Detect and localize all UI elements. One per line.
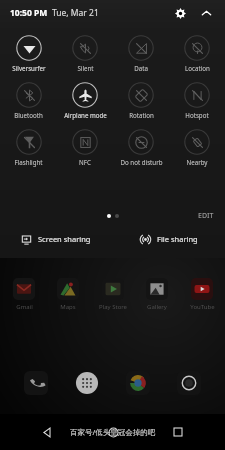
staticText: EDIT — [198, 211, 214, 221]
button[interactable]: Bluetooth — [0, 79, 57, 122]
button[interactable]: Do not disturb — [113, 126, 169, 169]
staticText: Airplane mode — [64, 111, 107, 119]
staticText: Silversurfer — [12, 64, 46, 72]
button[interactable]: Hotspot — [169, 79, 225, 122]
button[interactable]: Camera — [174, 368, 204, 398]
button[interactable]: Rotation — [113, 79, 169, 122]
staticText: Location — [185, 64, 210, 72]
button[interactable]: File sharing — [112, 228, 225, 250]
staticText: Hotspot — [185, 111, 209, 119]
staticText: Play Store — [99, 303, 127, 311]
button[interactable]: Nearby — [169, 126, 225, 169]
button[interactable]: YouTube — [181, 278, 223, 311]
staticText: Gallery — [147, 303, 167, 311]
button[interactable]: Location — [169, 32, 225, 75]
staticText: Do not disturb — [120, 158, 163, 166]
staticText: Data — [134, 64, 148, 72]
button[interactable]: Data — [113, 32, 169, 75]
button[interactable]: Gmail — [3, 278, 45, 311]
button[interactable]: EDIT — [195, 209, 217, 223]
button[interactable]: Back — [34, 419, 60, 445]
staticText: Nearby — [186, 158, 208, 166]
button[interactable]: Home — [100, 419, 126, 445]
button[interactable]: Collapse — [195, 2, 217, 24]
button[interactable]: Airplane mode — [57, 79, 113, 122]
button[interactable]: Maps — [47, 278, 89, 311]
button[interactable]: Silent — [57, 32, 113, 75]
staticText: YouTube — [190, 303, 215, 311]
staticText: Bluetooth — [14, 111, 43, 119]
staticText: NFC — [79, 158, 91, 166]
staticText: Maps — [60, 303, 76, 311]
button[interactable]: Flashlight — [0, 126, 57, 169]
staticText: File sharing — [157, 234, 198, 244]
button[interactable]: Chrome — [123, 368, 153, 398]
staticText: Tue, Mar 21 — [52, 7, 99, 19]
button[interactable]: Silversurfer — [0, 32, 57, 75]
button[interactable]: Play Store — [92, 278, 134, 311]
staticText: Gmail — [16, 303, 33, 311]
staticText: 10:50 PM — [10, 7, 48, 19]
button[interactable]: Gallery — [136, 278, 178, 311]
button[interactable]: Phone — [21, 368, 51, 398]
staticText: 百家号/低头皇冠会掉的吧 — [70, 427, 156, 437]
button[interactable]: All apps — [72, 368, 102, 398]
button[interactable]: Settings — [169, 2, 191, 24]
staticText: Flashlight — [14, 158, 43, 166]
staticText: Rotation — [129, 111, 154, 119]
staticText: Silent — [77, 64, 94, 72]
button[interactable]: Screen sharing — [0, 228, 112, 250]
button[interactable]: NFC — [57, 126, 113, 169]
staticText: Screen sharing — [38, 234, 91, 244]
button[interactable]: Recent apps — [165, 419, 191, 445]
